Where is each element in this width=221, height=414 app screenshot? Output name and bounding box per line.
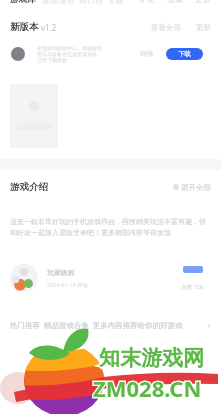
button[interactable]: 更新 — [196, 23, 211, 32]
staticText: 立即下载体验 — [37, 57, 67, 63]
staticText: 2024-01-15 评论 — [47, 281, 89, 289]
button[interactable]: 详情 — [140, 50, 153, 58]
button[interactable]: 新游预告 排行榜 专题 — [43, 0, 124, 5]
button[interactable]: 欢迎来到游戏中心，最新游戏 — [11, 41, 203, 67]
staticText: 资讯与攻略尽在这里等你来 — [37, 51, 97, 57]
staticText: 欢迎来到游戏中心，最新游戏 — [37, 45, 102, 51]
staticText: v1.2 — [41, 22, 57, 33]
button[interactable]: 更多 — [195, 0, 211, 4]
button[interactable]: Reply — [183, 266, 203, 273]
staticText: 热门推荐 精品游戏合集 更多内容推荐给你的好游戏 — [10, 320, 183, 330]
staticText: 点赞 128 — [181, 283, 203, 291]
button[interactable]: 收藏 — [167, 0, 183, 4]
button[interactable]: Download — [166, 48, 203, 60]
button[interactable]: 玩家昵称 — [10, 260, 203, 296]
button[interactable]: 评论 — [139, 0, 155, 4]
staticText: 新版本 — [10, 21, 39, 33]
staticText: 和好友一起加入冒险世界吧！更多精彩内容等你发现 — [10, 228, 171, 237]
staticText: 下载 — [178, 50, 191, 58]
button[interactable]: 查看全部 — [151, 23, 181, 32]
button[interactable]: 热门推荐 精品游戏合集 更多内容推荐给你的好游戏 — [10, 318, 211, 332]
button[interactable]: 展开全部 — [181, 183, 211, 192]
staticText: 游戏介绍 — [10, 181, 48, 193]
staticText: › — [208, 320, 211, 330]
button[interactable]: 游戏库 — [10, 0, 36, 5]
staticText: 这是一款非常好玩的手机游戏作品，画面精美玩法丰富有趣，快来 > — [10, 217, 211, 226]
staticText: 玩家昵称 — [47, 268, 75, 277]
